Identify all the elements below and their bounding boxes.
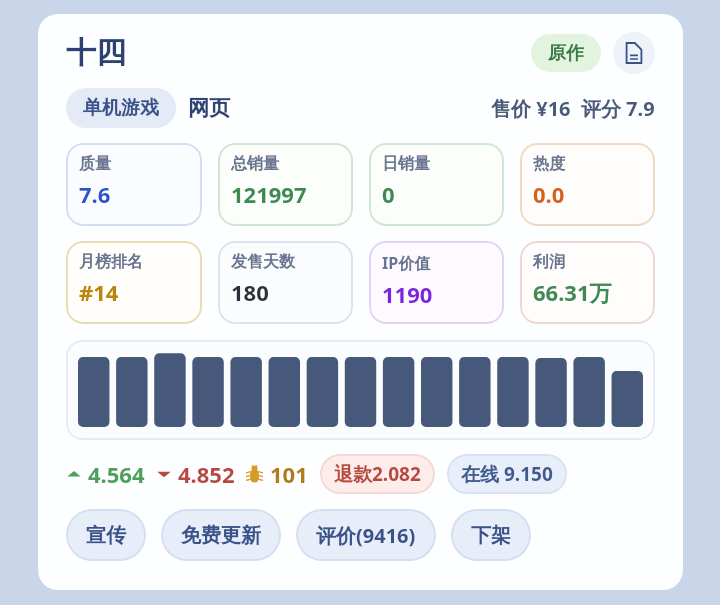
button[interactable]: 在线 9.150: [447, 454, 567, 494]
staticText: 1190: [382, 279, 433, 309]
other: Bugs: [245, 465, 264, 484]
staticText: 质量: [79, 154, 111, 174]
staticText: 4.852: [178, 459, 235, 489]
button[interactable]: 热度: [520, 143, 655, 226]
staticText: 利润: [533, 252, 565, 272]
staticText: 单机游戏: [83, 96, 159, 120]
staticText: 日销量: [382, 154, 430, 174]
button[interactable]: 质量: [66, 143, 202, 226]
button[interactable]: 总销量: [218, 143, 353, 226]
staticText: 7.6: [79, 179, 111, 209]
staticText: IP价值: [382, 252, 431, 274]
button[interactable]: 宣传: [66, 509, 146, 561]
staticText: #14: [79, 277, 119, 307]
staticText: 网页: [188, 95, 230, 121]
staticText: 宣传: [86, 523, 126, 548]
button[interactable]: 发售天数: [218, 241, 353, 324]
staticText: 0: [382, 179, 395, 209]
button[interactable]: 单机游戏: [66, 88, 176, 128]
staticText: 0.0: [533, 179, 565, 209]
button[interactable]: 日销量: [369, 143, 504, 226]
button[interactable]: 退款2.082: [320, 454, 435, 494]
staticText: 售价 ¥16 评分 7.9: [491, 95, 655, 122]
staticText: 总销量: [231, 154, 279, 174]
staticText: 101: [270, 459, 308, 489]
button[interactable]: 利润: [520, 241, 655, 324]
button[interactable]: 下架: [451, 509, 531, 561]
staticText: 评价(9416): [316, 522, 416, 549]
staticText: 4.564: [88, 459, 145, 489]
staticText: 180: [231, 277, 269, 307]
button[interactable]: Document: [613, 32, 655, 74]
staticText: 十四: [66, 34, 126, 72]
staticText: 原作: [548, 42, 584, 65]
staticText: 月榜排名: [79, 252, 143, 272]
button[interactable]: 评价(9416): [296, 509, 436, 561]
staticText: 退款2.082: [334, 461, 421, 487]
staticText: 热度: [533, 154, 565, 174]
staticText: 在线 9.150: [461, 461, 553, 487]
staticText: 免费更新: [181, 523, 261, 548]
button[interactable]: IP价值: [369, 241, 504, 324]
button[interactable]: 免费更新: [161, 509, 281, 561]
staticText: 121997: [231, 179, 307, 209]
button[interactable]: 月榜排名: [66, 241, 202, 324]
staticText: 下架: [471, 523, 511, 548]
button[interactable]: 原作: [531, 34, 601, 72]
staticText: 发售天数: [231, 252, 295, 272]
staticText: 66.31万: [533, 277, 612, 307]
